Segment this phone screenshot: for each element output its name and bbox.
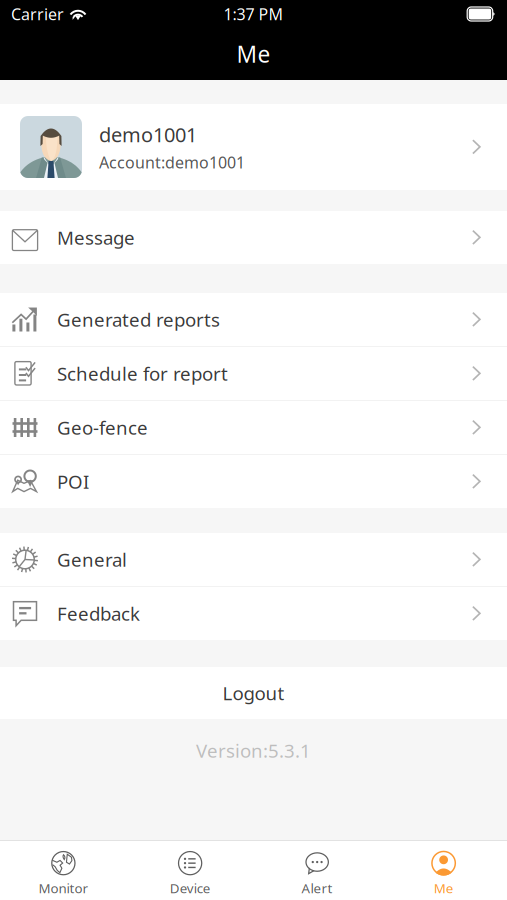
button[interactable]: Me	[380, 841, 507, 900]
button[interactable]: Feedback	[0, 587, 507, 640]
staticText: Geo-fence	[57, 415, 148, 440]
staticText: Me	[434, 879, 454, 897]
staticText: Generated reports	[57, 307, 220, 332]
staticText: Logout	[222, 681, 284, 705]
staticText: 1:37 PM	[223, 3, 283, 25]
staticText: POI	[57, 469, 89, 494]
staticText: Account:demo1001	[99, 152, 245, 173]
button[interactable]: Device	[127, 841, 254, 900]
button[interactable]: Alert	[253, 841, 380, 900]
button[interactable]: Geo-fence	[0, 401, 507, 454]
staticText: Carrier	[11, 3, 64, 25]
staticText: Monitor	[38, 879, 88, 897]
staticText: demo1001	[99, 121, 197, 148]
staticText: General	[57, 547, 127, 572]
staticText: Feedback	[57, 601, 140, 626]
button[interactable]: Generated reports	[0, 293, 507, 346]
staticText: Alert	[301, 879, 332, 897]
button[interactable]: POI	[0, 455, 507, 508]
staticText: Me	[236, 39, 270, 69]
button[interactable]: Monitor	[0, 841, 127, 900]
button[interactable]: Message	[0, 211, 507, 264]
button[interactable]: Schedule for report	[0, 347, 507, 400]
button[interactable]: General	[0, 533, 507, 586]
staticText: Schedule for report	[57, 361, 228, 386]
staticText: Device	[170, 879, 211, 897]
staticText: Version:5.3.1	[196, 738, 311, 763]
button[interactable]: demo1001	[0, 104, 507, 190]
button[interactable]: Logout	[0, 667, 507, 719]
staticText: Message	[57, 225, 135, 250]
